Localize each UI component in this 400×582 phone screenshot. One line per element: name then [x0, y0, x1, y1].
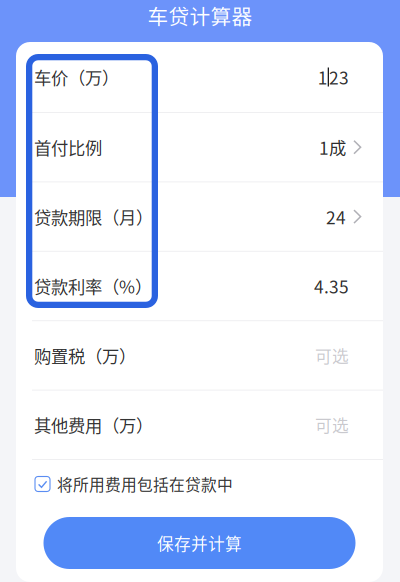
- staticText: 24: [326, 204, 346, 229]
- button[interactable]: 其他费用（万）: [16, 391, 383, 459]
- staticText: 可选: [315, 413, 349, 437]
- button[interactable]: 贷款利率（%）: [16, 252, 383, 320]
- staticText: 其他费用（万）: [34, 412, 153, 437]
- staticText: 车价（万）: [34, 64, 119, 90]
- staticText: 将所用费用包括在贷款中: [57, 473, 233, 495]
- staticText: 购置税（万）: [34, 343, 136, 368]
- staticText: 保存并计算: [157, 531, 242, 555]
- button[interactable]: 车价（万）: [16, 42, 383, 112]
- staticText: 贷款期限（月）: [34, 204, 153, 229]
- staticText: 1: [318, 64, 328, 90]
- staticText: 可选: [315, 343, 349, 367]
- button[interactable]: 保存并计算: [43, 517, 355, 569]
- button[interactable]: 首付比例: [16, 113, 383, 181]
- staticText: 1成: [319, 135, 346, 160]
- staticText: 23: [329, 64, 349, 90]
- staticText: 首付比例: [34, 135, 102, 160]
- staticText: 贷款利率（%）: [34, 273, 152, 299]
- button[interactable]: 将所用费用包括在贷款中: [16, 460, 383, 508]
- staticText: 车贷计算器: [147, 0, 252, 30]
- button[interactable]: 购置税（万）: [16, 321, 383, 390]
- button[interactable]: 贷款期限（月）: [16, 182, 383, 251]
- staticText: 4.35: [314, 273, 349, 299]
